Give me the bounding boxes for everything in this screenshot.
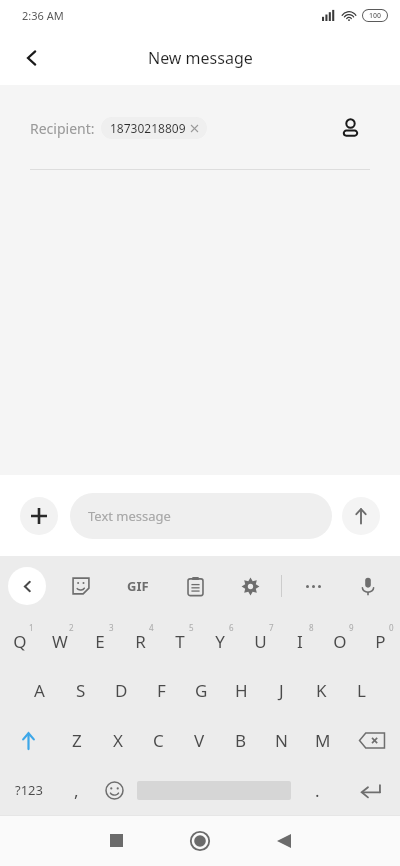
staticText: D bbox=[115, 679, 128, 702]
button[interactable]: Backspace bbox=[343, 715, 400, 765]
staticText: T bbox=[175, 630, 185, 653]
staticText: ?123 bbox=[15, 781, 43, 799]
staticText: W bbox=[52, 630, 68, 653]
button[interactable]: G bbox=[181, 666, 221, 715]
button[interactable]: K bbox=[301, 666, 341, 715]
staticText: C bbox=[153, 729, 164, 752]
button[interactable]: 18730218809 bbox=[101, 117, 207, 139]
button[interactable]: Emoji bbox=[95, 765, 133, 815]
button[interactable]: S bbox=[60, 666, 101, 715]
staticText: 0 bbox=[389, 622, 394, 633]
staticText: Q bbox=[13, 630, 27, 653]
button[interactable]: ?123 bbox=[0, 765, 57, 815]
button[interactable]: More options bbox=[293, 566, 333, 606]
button[interactable]: Enter bbox=[340, 765, 400, 815]
button[interactable]: E bbox=[80, 616, 120, 666]
staticText: GIF bbox=[127, 577, 149, 595]
staticText: 9 bbox=[349, 622, 354, 633]
staticText: A bbox=[34, 679, 45, 702]
staticText: N bbox=[275, 729, 288, 752]
staticText: E bbox=[95, 630, 105, 653]
button[interactable]: L bbox=[341, 666, 381, 715]
staticText: X bbox=[113, 729, 123, 752]
button[interactable]: B bbox=[220, 715, 261, 765]
button[interactable]: O bbox=[320, 616, 360, 666]
staticText: G bbox=[195, 679, 208, 702]
button[interactable]: W bbox=[40, 616, 80, 666]
staticText: 18730218809 bbox=[110, 120, 186, 136]
button[interactable]: I bbox=[280, 616, 320, 666]
button[interactable]: Recents bbox=[88, 815, 144, 866]
staticText: F bbox=[157, 679, 166, 702]
staticText: Y bbox=[215, 630, 225, 653]
button[interactable]: . bbox=[295, 765, 340, 815]
staticText: P bbox=[375, 630, 386, 653]
staticText: H bbox=[235, 679, 248, 702]
button[interactable]: X bbox=[97, 715, 138, 765]
button[interactable]: D bbox=[101, 666, 141, 715]
button[interactable]: Send bbox=[342, 497, 380, 535]
button[interactable]: Back bbox=[256, 815, 312, 866]
button[interactable] bbox=[133, 765, 295, 815]
button[interactable]: Z bbox=[56, 715, 97, 765]
staticText: K bbox=[316, 679, 327, 702]
button[interactable]: Text message bbox=[70, 493, 332, 539]
button[interactable]: GIF bbox=[116, 564, 160, 608]
button[interactable]: T bbox=[160, 616, 200, 666]
staticText: O bbox=[333, 630, 347, 653]
button[interactable]: Close toolbar bbox=[8, 567, 46, 605]
button[interactable]: Shift bbox=[0, 715, 56, 765]
button[interactable]: Settings bbox=[230, 566, 270, 606]
button[interactable]: Voice input bbox=[348, 566, 388, 606]
staticText: 2:36 AM bbox=[22, 8, 64, 23]
staticText: Text message bbox=[88, 507, 171, 525]
staticText: M bbox=[315, 729, 331, 752]
button[interactable]: J bbox=[261, 666, 301, 715]
button[interactable]: Choose contact bbox=[330, 108, 370, 148]
button[interactable]: A bbox=[19, 666, 60, 715]
staticText: U bbox=[254, 630, 267, 653]
staticText: Recipient: bbox=[30, 119, 95, 138]
staticText: 5 bbox=[189, 622, 194, 633]
staticText: New message bbox=[148, 47, 253, 69]
button[interactable]: Back bbox=[8, 34, 56, 82]
button[interactable]: R bbox=[120, 616, 160, 666]
staticText: . bbox=[315, 779, 320, 802]
button[interactable]: Add attachment bbox=[20, 497, 58, 535]
button[interactable]: U bbox=[240, 616, 280, 666]
staticText: , bbox=[74, 779, 79, 802]
button[interactable]: F bbox=[141, 666, 181, 715]
staticText: I bbox=[297, 630, 303, 653]
button[interactable]: P bbox=[360, 616, 400, 666]
staticText: 3 bbox=[109, 622, 114, 633]
staticText: 8 bbox=[309, 622, 314, 633]
staticText: 6 bbox=[229, 622, 234, 633]
button[interactable]: Stickers bbox=[61, 566, 101, 606]
button[interactable]: Home bbox=[172, 815, 228, 866]
staticText: B bbox=[235, 729, 247, 752]
staticText: Z bbox=[72, 729, 82, 752]
staticText: R bbox=[135, 630, 146, 653]
button[interactable]: , bbox=[57, 765, 95, 815]
staticText: L bbox=[357, 679, 366, 702]
button[interactable]: H bbox=[221, 666, 261, 715]
button[interactable]: V bbox=[179, 715, 220, 765]
staticText: 4 bbox=[149, 622, 154, 633]
staticText: J bbox=[279, 679, 284, 702]
button[interactable]: N bbox=[261, 715, 302, 765]
button[interactable]: Clipboard bbox=[175, 566, 215, 606]
staticText: V bbox=[194, 729, 205, 752]
staticText: 7 bbox=[269, 622, 274, 633]
staticText: 100 bbox=[369, 11, 382, 21]
staticText: 2 bbox=[69, 622, 74, 633]
button[interactable]: Q bbox=[0, 616, 40, 666]
button[interactable]: C bbox=[138, 715, 179, 765]
staticText: S bbox=[76, 679, 86, 702]
button[interactable]: M bbox=[302, 715, 343, 765]
staticText: 1 bbox=[29, 622, 34, 633]
button[interactable]: Y bbox=[200, 616, 240, 666]
